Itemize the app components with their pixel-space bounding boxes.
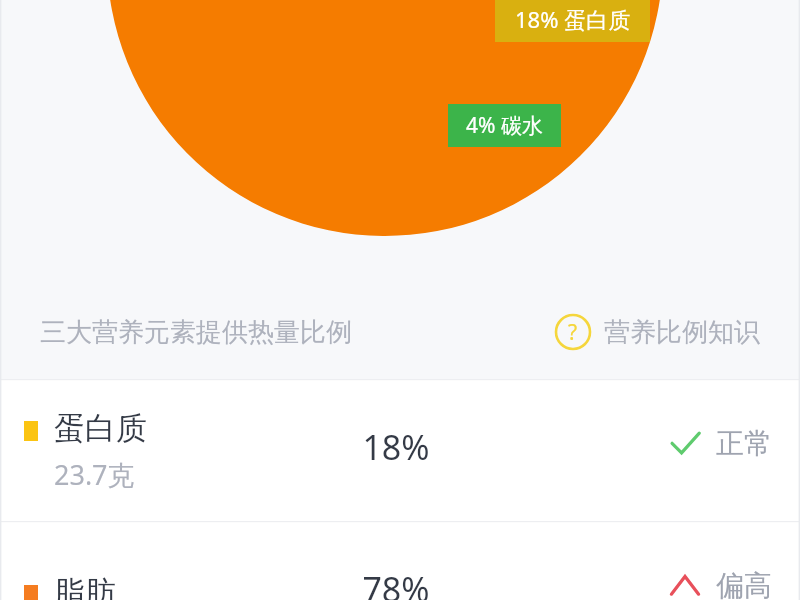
other: 正常: [668, 427, 702, 461]
staticText: 4% 碳水: [466, 111, 543, 140]
staticText: 偏高: [716, 568, 772, 600]
other: 营养比例知识帮助: [554, 313, 592, 351]
staticText: 营养比例知识: [604, 316, 760, 349]
other: 偏高: [668, 569, 702, 600]
staticText: 18%: [362, 424, 430, 470]
button[interactable]: 脂肪: [0, 522, 800, 600]
button[interactable]: 18% 蛋白质: [495, 0, 650, 42]
staticText: ?: [568, 318, 578, 347]
button[interactable]: 4% 碳水: [448, 104, 561, 147]
button[interactable]: 蛋白质: [0, 380, 800, 521]
staticText: 18% 蛋白质: [515, 4, 631, 34]
staticText: 正常: [716, 426, 772, 461]
staticText: 脂肪: [54, 573, 116, 600]
staticText: 三大营养元素提供热量比例: [40, 316, 352, 349]
staticText: 23.7克: [54, 456, 135, 493]
staticText: 78%: [362, 566, 430, 600]
button[interactable]: 营养比例知识帮助: [554, 313, 760, 351]
staticText: 蛋白质: [54, 409, 147, 448]
